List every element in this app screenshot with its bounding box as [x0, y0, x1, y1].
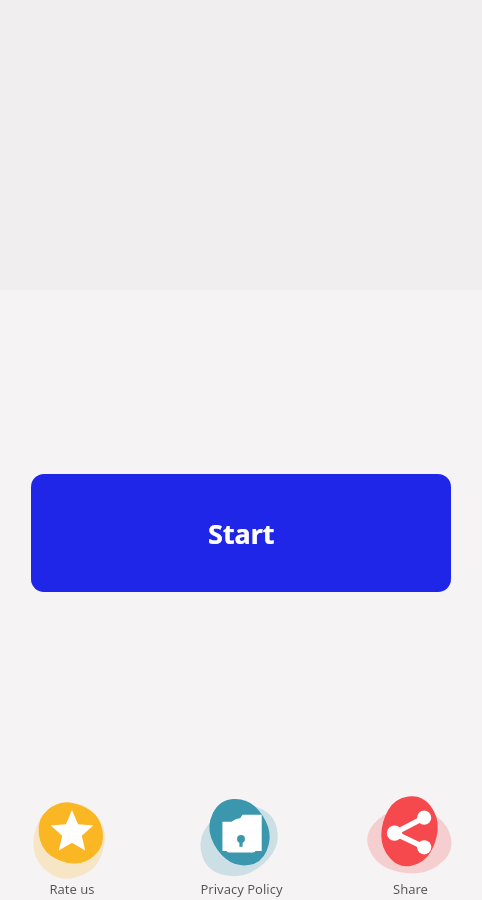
button[interactable]: Rate us	[16, 792, 128, 898]
button[interactable]: Start	[31, 474, 451, 592]
staticText: Start	[208, 515, 275, 552]
staticText: Rate us	[49, 880, 95, 898]
button[interactable]: Privacy Policy	[185, 792, 297, 898]
staticText: Privacy Policy	[200, 880, 283, 898]
staticText: Share	[393, 880, 428, 898]
button[interactable]: Share	[354, 792, 466, 898]
